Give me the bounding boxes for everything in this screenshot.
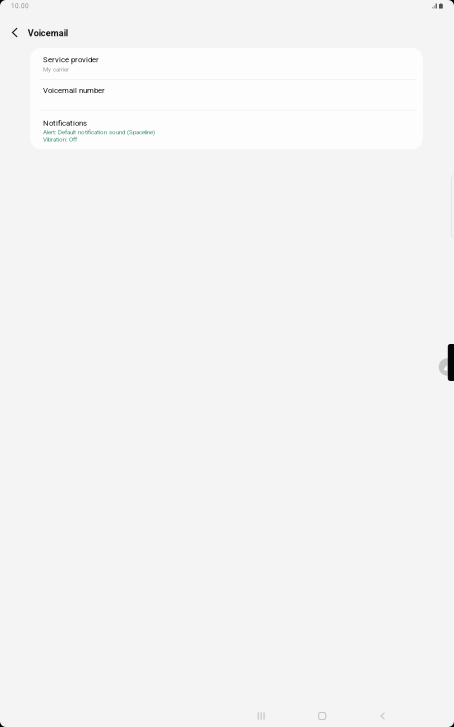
staticText: My carrier	[43, 66, 69, 73]
button[interactable]: Notifications	[30, 111, 423, 149]
button[interactable]: Service provider	[30, 48, 423, 79]
button[interactable]: Back	[353, 705, 413, 727]
button[interactable]: Recents	[230, 705, 292, 727]
staticText: Vibration: Off	[43, 136, 77, 143]
button[interactable]: Back	[7, 14, 23, 50]
staticText: Voicemail	[28, 28, 68, 38]
button[interactable]: Home	[292, 705, 353, 727]
staticText: Alert: Default notification sound (Space…	[43, 128, 155, 136]
button[interactable]: Voicemail number	[30, 80, 423, 110]
staticText: Voicemail number	[43, 86, 105, 95]
staticText: Service provider	[43, 55, 99, 64]
button[interactable]: Open edge panel	[0, 0, 454, 727]
staticText: 10.00	[11, 2, 29, 10]
staticText: Notifications	[43, 119, 87, 128]
